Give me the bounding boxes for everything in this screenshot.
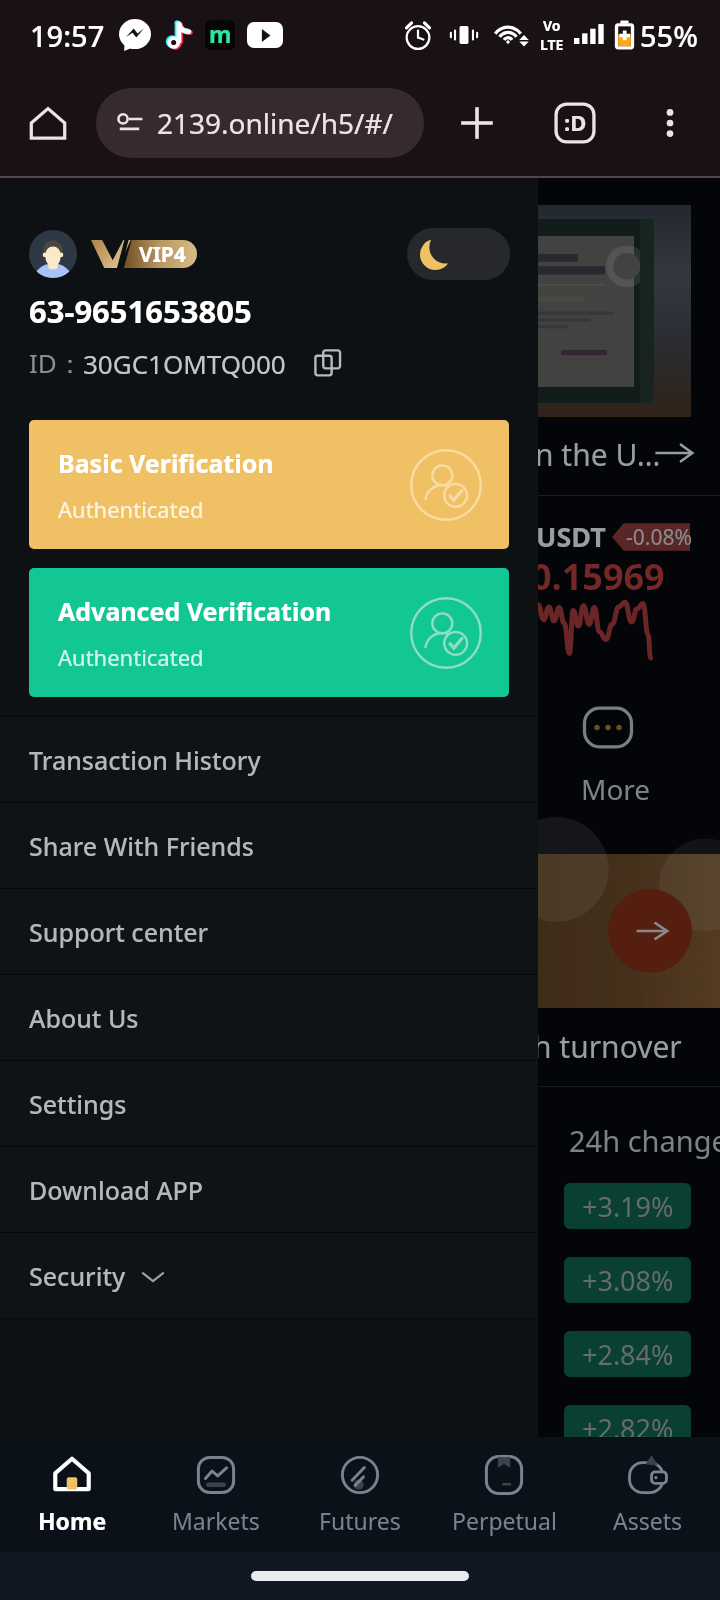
button[interactable]: Markets bbox=[144, 1437, 288, 1552]
staticText: Home bbox=[38, 1505, 107, 1536]
button[interactable]: Toggle dark mode bbox=[407, 228, 510, 280]
button[interactable]: Share With Friends bbox=[0, 803, 538, 888]
staticText: Security bbox=[29, 1259, 126, 1293]
staticText: ID： bbox=[29, 345, 83, 381]
staticText: 24h change bbox=[569, 1121, 720, 1160]
staticText: More bbox=[581, 770, 651, 808]
staticText: USDT bbox=[536, 518, 606, 555]
button[interactable]: Advanced Verification bbox=[29, 568, 509, 697]
staticText: +3.08% bbox=[582, 1262, 674, 1299]
button[interactable]: Basic Verification bbox=[29, 420, 509, 549]
staticText: n the U… bbox=[535, 434, 661, 475]
button[interactable]: 2139.online/h5/#/ bbox=[96, 88, 424, 158]
button[interactable]: Tabs bbox=[546, 94, 604, 152]
staticText: +2.82% bbox=[582, 1410, 674, 1447]
staticText: -0.08% bbox=[626, 523, 692, 552]
staticText: m bbox=[209, 18, 232, 48]
staticText: Settings bbox=[29, 1087, 127, 1121]
staticText: 2139.online/h5/#/ bbox=[157, 104, 394, 142]
staticText: 30GC1OMTQ000 bbox=[83, 346, 286, 381]
staticText: 19:57 bbox=[30, 16, 105, 55]
button[interactable]: Futures bbox=[288, 1437, 432, 1552]
staticText: Assets bbox=[613, 1505, 683, 1536]
button[interactable]: Assets bbox=[576, 1437, 720, 1552]
staticText: Share With Friends bbox=[29, 829, 254, 863]
staticText: 55% bbox=[640, 16, 698, 55]
staticText: 63-9651653805 bbox=[29, 290, 252, 332]
button[interactable]: Perpetual bbox=[432, 1437, 576, 1552]
staticText: About Us bbox=[29, 1001, 139, 1035]
staticText: Futures bbox=[319, 1505, 401, 1536]
button[interactable]: Download APP bbox=[0, 1147, 538, 1232]
staticText: +3.19% bbox=[582, 1188, 674, 1225]
staticText: h turnover bbox=[533, 1026, 682, 1067]
staticText: +2.84% bbox=[582, 1336, 674, 1373]
staticText: :D bbox=[564, 107, 587, 137]
button[interactable]: About Us bbox=[0, 975, 538, 1060]
button[interactable]: Home bbox=[20, 95, 76, 151]
staticText: Support center bbox=[29, 915, 209, 949]
button[interactable]: More options bbox=[642, 95, 698, 151]
staticText: Authenticated bbox=[58, 642, 204, 672]
staticText: Perpetual bbox=[452, 1505, 557, 1536]
staticText: Vo bbox=[543, 16, 561, 35]
staticText: VIP4 bbox=[139, 240, 186, 268]
button[interactable]: Settings bbox=[0, 1061, 538, 1146]
button[interactable]: Home bbox=[0, 1437, 144, 1552]
button[interactable]: New tab bbox=[448, 94, 506, 152]
staticText: LTE bbox=[540, 35, 564, 54]
staticText: Transaction History bbox=[29, 743, 261, 777]
staticText: Basic Verification bbox=[58, 446, 274, 480]
staticText: Download APP bbox=[29, 1173, 204, 1207]
button[interactable]: Support center bbox=[0, 889, 538, 974]
staticText: Markets bbox=[172, 1505, 260, 1536]
staticText: 0.15969 bbox=[531, 552, 665, 601]
staticText: Advanced Verification bbox=[58, 594, 332, 628]
staticText: Authenticated bbox=[58, 494, 204, 524]
button[interactable]: Copy ID bbox=[308, 344, 348, 382]
button[interactable]: Security bbox=[0, 1233, 538, 1318]
button[interactable]: Transaction History bbox=[0, 717, 538, 802]
